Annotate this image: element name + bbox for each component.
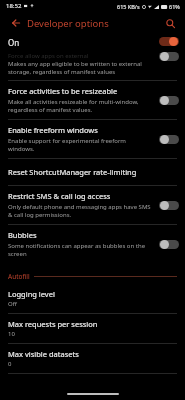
staticText: Max requests per session <box>8 319 98 329</box>
staticText: Force allow apps on external <box>8 52 89 60</box>
button[interactable]: Toggle off <box>159 135 179 144</box>
staticText: 615 KB/s <box>117 3 140 10</box>
button[interactable]: Max visible datasets <box>0 344 185 373</box>
staticText: Autofill <box>8 272 30 281</box>
staticText: On <box>8 37 20 48</box>
staticText: Logging level <box>8 289 55 299</box>
button[interactable]: Max requests per session <box>0 314 185 343</box>
staticText: Reset ShortcutManager rate-limiting <box>8 167 137 177</box>
button[interactable]: Reset ShortcutManager rate-limiting <box>0 159 185 185</box>
button[interactable]: Force activities to be resizeable <box>0 81 185 119</box>
button[interactable]: Toggle off <box>159 96 179 105</box>
staticText: Only default phone and messaging apps ha… <box>8 203 153 219</box>
staticText: 18:52 <box>6 2 22 10</box>
staticText: Enable support for experimental freeform… <box>8 137 153 153</box>
staticText: Enable freeform windows <box>8 125 98 135</box>
staticText: Some notifications can appear as bubbles… <box>8 242 153 258</box>
button[interactable]: Back <box>8 15 24 31</box>
staticText: Force activities to be resizeable <box>8 86 118 96</box>
staticText: 10 <box>8 330 15 338</box>
button[interactable]: Logging level <box>0 284 185 313</box>
button[interactable]: Bubbles <box>0 225 185 263</box>
staticText: Make all activities resizeable for multi… <box>8 98 153 114</box>
button[interactable]: Toggle off <box>159 240 179 249</box>
button[interactable]: On <box>0 34 185 80</box>
button[interactable]: Search <box>162 15 178 31</box>
staticText: Max visible datasets <box>8 349 79 359</box>
button[interactable]: Enable freeform windows <box>0 120 185 158</box>
button[interactable]: Toggle off <box>159 201 179 210</box>
staticText: Bubbles <box>8 230 37 240</box>
button[interactable]: Toggle off <box>159 52 179 61</box>
staticText: Restrict SMS & call log access <box>8 191 111 201</box>
staticText: Off <box>8 300 17 308</box>
staticText: 61% <box>169 3 180 10</box>
staticText: 0 <box>8 360 12 368</box>
button[interactable]: Restrict SMS & call log access <box>0 186 185 224</box>
staticText: Makes any app eligible to be written to … <box>8 60 159 76</box>
staticText: Developer options <box>27 17 109 30</box>
button[interactable]: Toggle on <box>159 37 179 46</box>
